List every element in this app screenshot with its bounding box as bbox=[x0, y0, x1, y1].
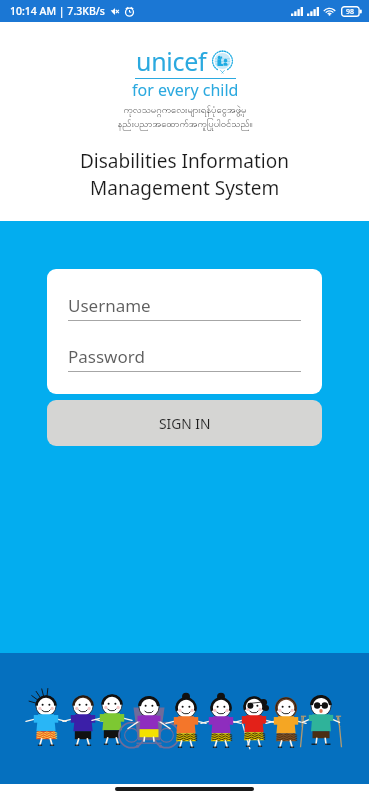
staticText: Disabilities Information bbox=[80, 148, 289, 174]
staticText: SIGN IN bbox=[159, 414, 211, 433]
staticText: Username bbox=[68, 294, 151, 317]
staticText: 10:14 AM | 7.3KB/s bbox=[10, 4, 105, 18]
other: Home gesture bar bbox=[115, 787, 254, 791]
staticText: 98 bbox=[346, 7, 355, 17]
staticText: ကုလသမဂ္ဂကလေးများရန်ပုံငွေအဖွဲ့မှ bbox=[123, 104, 247, 118]
button[interactable]: Username bbox=[68, 294, 301, 321]
staticText: နည်းပညာအထောက်အကူပြုပါဝင်သည်။ bbox=[117, 118, 253, 132]
staticText: Management System bbox=[90, 175, 280, 201]
button[interactable]: Password bbox=[68, 345, 301, 372]
staticText: Password bbox=[68, 345, 145, 368]
button[interactable]: SIGN IN bbox=[47, 400, 322, 446]
staticText: unicef bbox=[136, 44, 207, 78]
staticText: for every child bbox=[132, 79, 239, 101]
